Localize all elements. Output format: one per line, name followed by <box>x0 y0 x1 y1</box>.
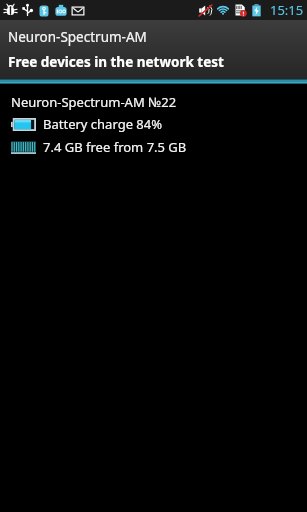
staticText: 7.4 GB free from 7.5 GB <box>43 138 187 156</box>
staticText: Free devices in the network test <box>8 53 224 71</box>
staticText: Neuron-Spectrum-AM №22 <box>11 93 177 111</box>
staticText: Neuron-Spectrum-AM <box>8 28 147 46</box>
button[interactable]: Neuron-Spectrum-AM №22 <box>0 84 307 164</box>
staticText: 15:15 <box>270 1 304 19</box>
button[interactable]: Neuron-Spectrum-AM <box>0 20 307 79</box>
staticText: Battery charge 84% <box>43 115 163 133</box>
